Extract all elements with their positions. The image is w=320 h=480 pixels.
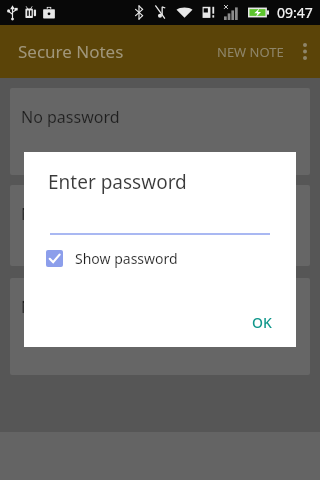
staticText: No password <box>21 296 120 318</box>
staticText: No password <box>21 106 120 128</box>
button[interactable]: More options <box>290 25 320 78</box>
staticText: Secure Notes <box>18 40 124 63</box>
staticText: 09:47 <box>277 3 313 22</box>
button[interactable]: No password <box>10 278 310 375</box>
staticText: Show password <box>75 249 178 268</box>
button[interactable]: OK <box>238 304 286 341</box>
staticText: Enter password <box>48 169 187 195</box>
button[interactable]: No password <box>10 88 310 175</box>
button[interactable]: Show password <box>46 249 178 268</box>
staticText: OK <box>252 313 272 332</box>
staticText: NEW NOTE <box>217 43 284 61</box>
button[interactable]: No password <box>10 185 310 266</box>
button[interactable]: NEW NOTE <box>211 33 290 71</box>
staticText: No password <box>21 203 120 225</box>
